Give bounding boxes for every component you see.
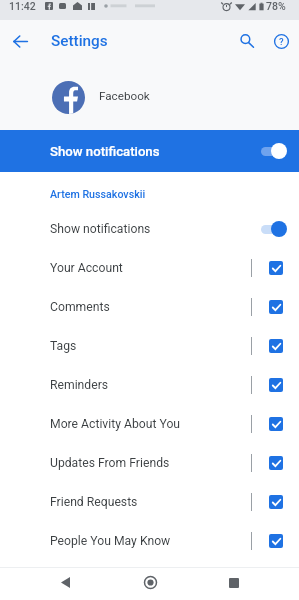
staticText: People You May Know — [50, 534, 171, 548]
staticText: 11:42 — [9, 0, 36, 12]
button[interactable]: People You May Know — [0, 521, 299, 560]
staticText: Your Account — [50, 261, 123, 275]
button[interactable]: Your Account checkbox — [269, 261, 283, 275]
button[interactable]: Reminders checkbox — [269, 378, 283, 392]
button[interactable]: Your Account — [0, 248, 299, 287]
button[interactable]: Updates From Friends — [0, 443, 299, 482]
staticText: 78% — [266, 0, 286, 12]
button[interactable]: Comments checkbox — [269, 300, 283, 314]
button[interactable]: Search — [230, 20, 264, 62]
staticText: More Activity About You — [50, 417, 181, 431]
button[interactable]: People You May Know checkbox — [269, 534, 283, 548]
staticText: Comments — [50, 300, 110, 314]
button[interactable]: Tags checkbox — [269, 339, 283, 353]
button[interactable]: Friend Requests checkbox — [269, 495, 283, 509]
button[interactable]: Comments — [0, 287, 299, 326]
staticText: ? — [279, 36, 284, 47]
button[interactable]: Home — [130, 568, 170, 597]
button[interactable]: Back — [0, 20, 41, 62]
button[interactable]: Updates From Friends checkbox — [269, 456, 283, 470]
staticText: Show notifications — [50, 222, 151, 236]
button[interactable]: Back — [45, 568, 85, 597]
button[interactable]: Show notifications — [0, 209, 299, 248]
staticText: Facebook — [99, 89, 150, 103]
staticText: Friend Requests — [50, 495, 138, 509]
button[interactable]: Help — [264, 20, 299, 62]
button[interactable]: Recents — [214, 568, 254, 597]
staticText: Show notifications — [50, 144, 160, 159]
staticText: Tags — [50, 339, 77, 353]
button[interactable]: Reminders — [0, 365, 299, 404]
button[interactable]: Tags — [0, 326, 299, 365]
button[interactable]: Show notifications — [0, 130, 299, 172]
button[interactable]: Facebook — [0, 62, 299, 130]
staticText: Reminders — [50, 378, 109, 392]
staticText: Artem Russakovskii — [50, 188, 146, 201]
staticText: Settings — [51, 32, 108, 50]
button[interactable]: More Activity About You checkbox — [269, 417, 283, 431]
staticText: Updates From Friends — [50, 456, 170, 470]
button[interactable]: More Activity About You — [0, 404, 299, 443]
button[interactable]: Friend Requests — [0, 482, 299, 521]
